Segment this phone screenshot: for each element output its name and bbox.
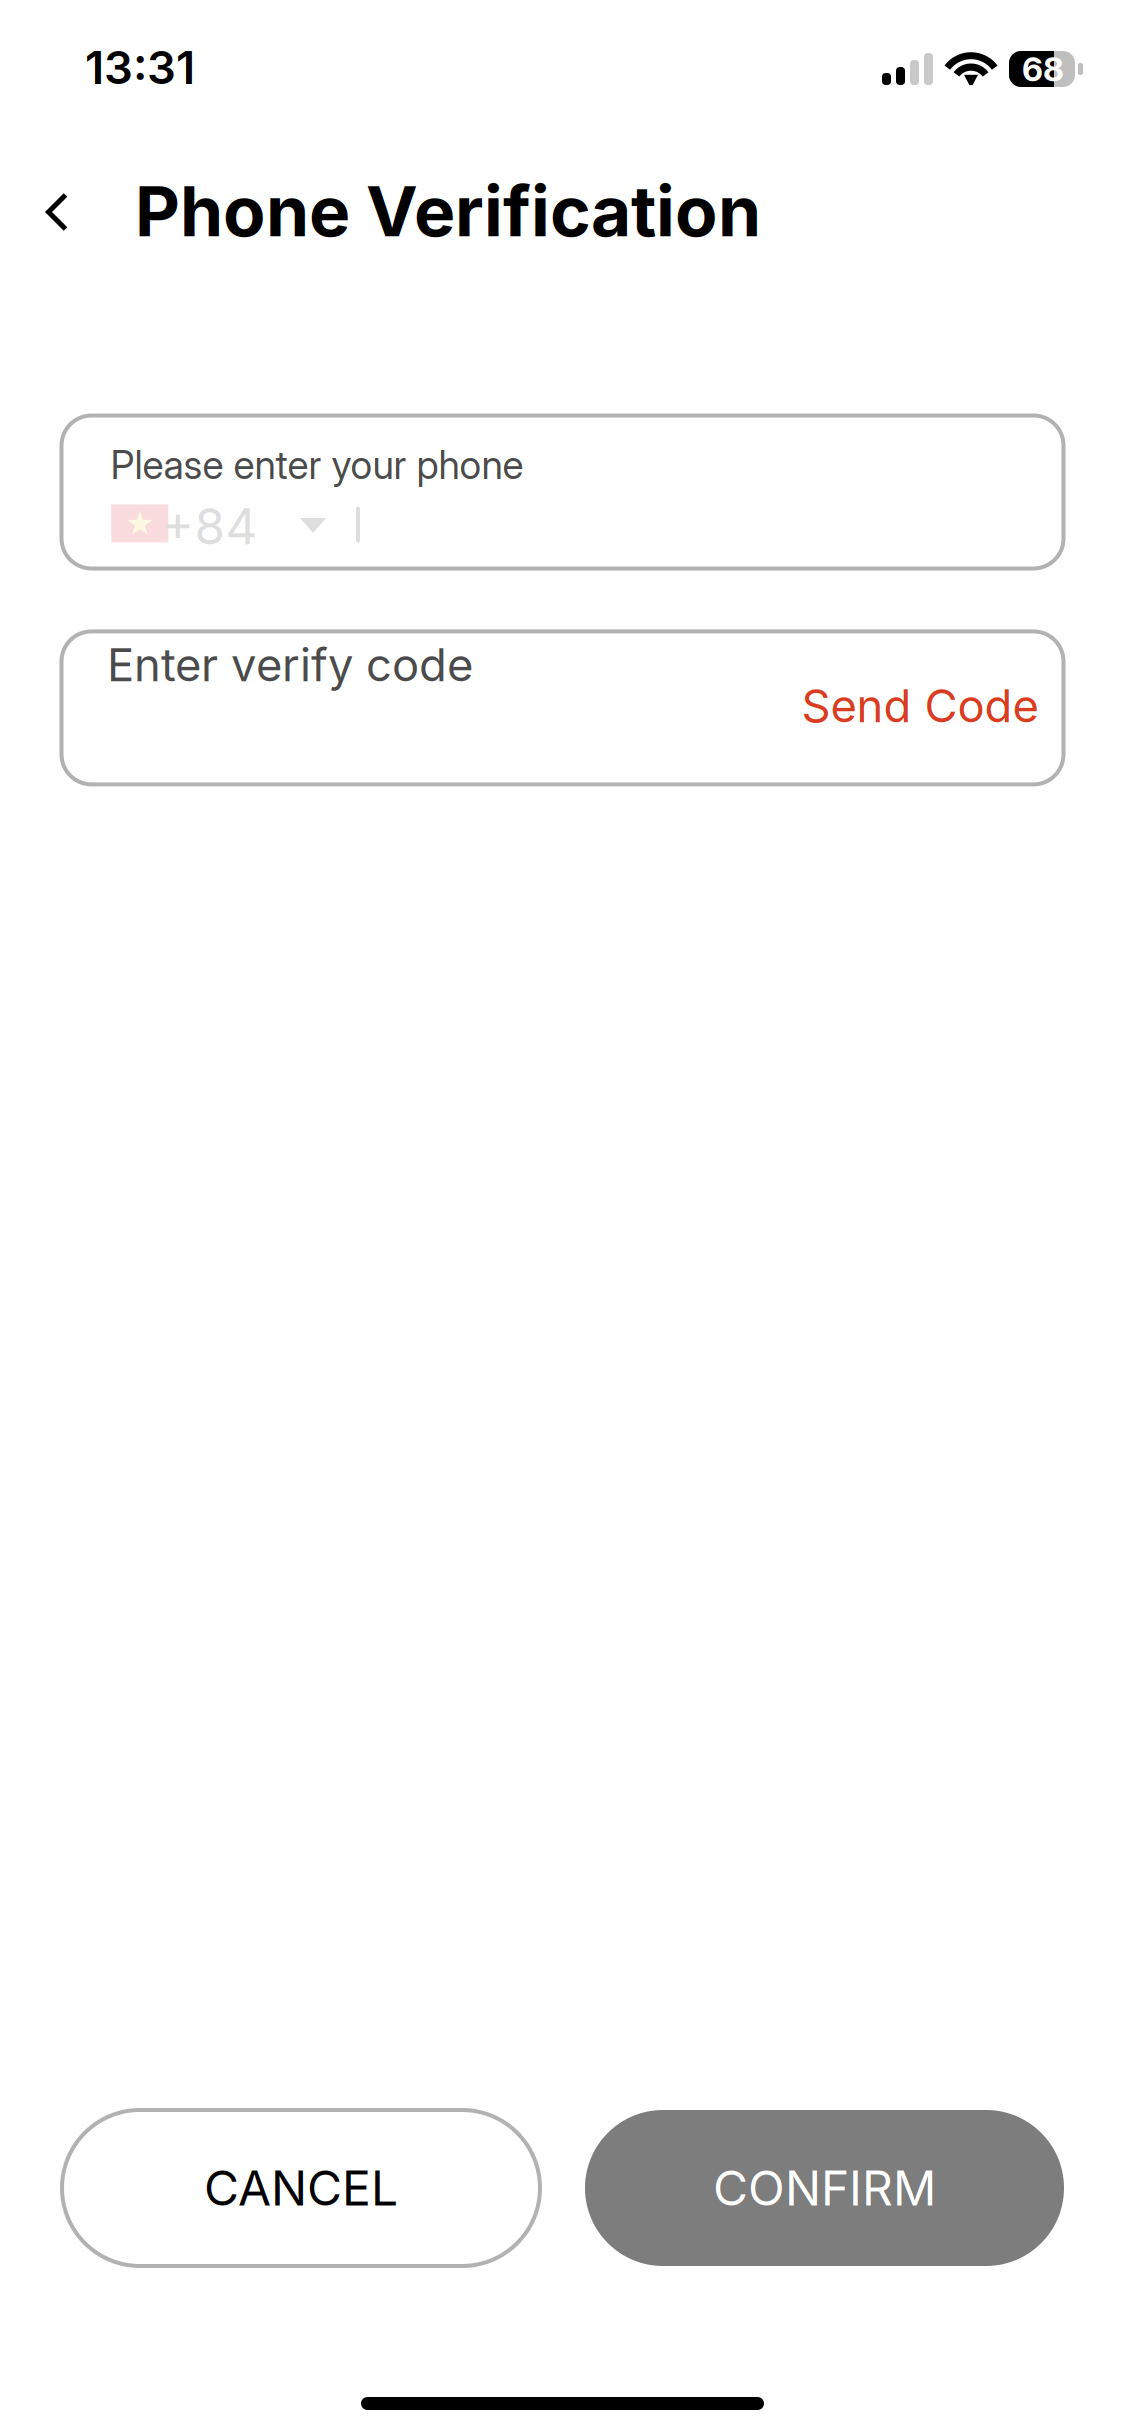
staticText: Phone Verification [135, 169, 761, 253]
button[interactable]: Send Code [801, 678, 1038, 733]
staticText: Send Code [801, 678, 1038, 733]
staticText: Enter verify code [107, 637, 473, 692]
button[interactable]: Back [12, 167, 102, 257]
button[interactable]: CANCEL [62, 2110, 540, 2266]
button[interactable]: CONFIRM [585, 2110, 1064, 2266]
staticText: +84 [161, 496, 257, 556]
button[interactable]: Please enter your phone [61, 415, 1063, 568]
staticText: CANCEL [204, 2159, 398, 2217]
staticText: 68 [1022, 49, 1064, 89]
staticText: CONFIRM [713, 2159, 936, 2217]
staticText: Please enter your phone [110, 441, 523, 488]
staticText: 13:31 [85, 40, 195, 95]
